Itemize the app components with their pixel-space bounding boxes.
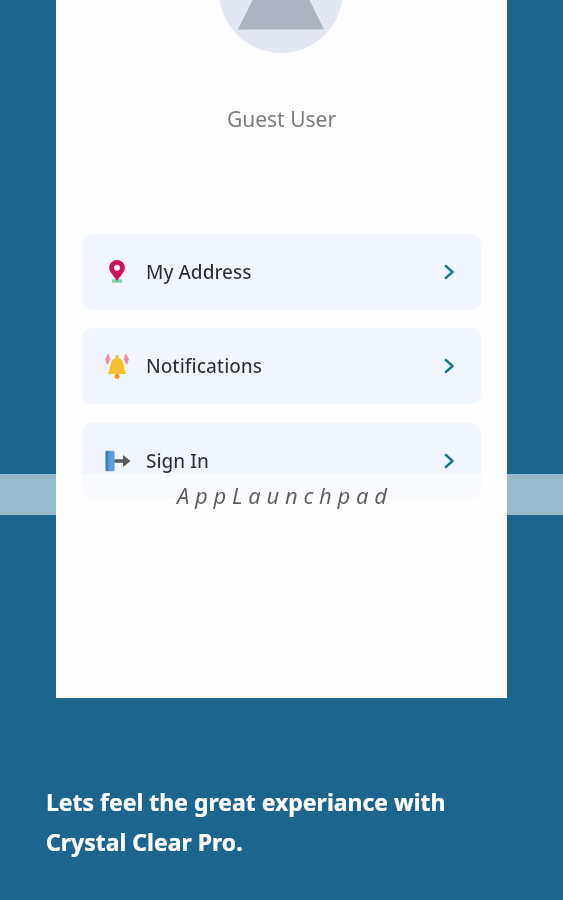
staticText: My Address xyxy=(146,259,252,285)
staticText: Sign In xyxy=(146,448,209,474)
button[interactable]: Sign In xyxy=(82,423,481,499)
button[interactable]: Notifications xyxy=(82,328,481,404)
staticText: A p p L a u n c h p a d xyxy=(177,480,387,510)
staticText: Crystal Clear Pro. xyxy=(46,826,243,857)
staticText: Lets feel the great experiance with xyxy=(46,786,446,817)
button[interactable]: My Address xyxy=(82,234,481,310)
staticText: Guest User xyxy=(0,105,563,134)
staticText: Notifications xyxy=(146,353,263,379)
